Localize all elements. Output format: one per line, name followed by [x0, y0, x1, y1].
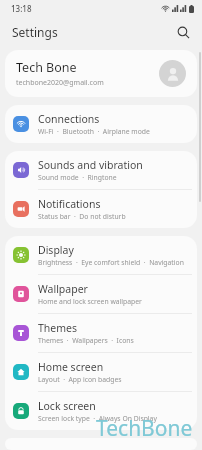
button[interactable]: Themes — [5, 314, 197, 352]
staticText: TechBone — [96, 414, 193, 443]
button[interactable]: Notifications — [5, 190, 197, 228]
staticText: Brightness · Eye comfort shield · Naviga… — [38, 258, 189, 267]
staticText: Home and lock screen wallpaper — [38, 297, 142, 306]
staticText: Screen lock type · Always On Display — [38, 414, 157, 423]
staticText: Layout · App icon badges — [38, 375, 122, 384]
staticText: 13:18 — [11, 3, 32, 14]
staticText: Themes · Wallpapers · Icons — [38, 336, 134, 345]
button[interactable]: Home screen — [5, 353, 197, 391]
staticText: Lock screen — [38, 399, 96, 413]
staticText: techbone2020@gmail.com — [16, 78, 104, 88]
staticText: Tech Bone — [16, 59, 77, 76]
staticText: Settings — [12, 24, 58, 40]
button[interactable]: Sounds and vibration — [5, 151, 197, 189]
staticText: Wallpaper — [38, 282, 88, 296]
staticText: Status bar · Do not disturb — [38, 212, 126, 221]
staticText: Wi-Fi · Bluetooth · Airplane mode — [38, 127, 150, 136]
staticText: Display — [38, 243, 74, 257]
button[interactable]: Tech Bone — [5, 50, 197, 97]
staticText: Connections — [38, 112, 100, 126]
staticText: Home screen — [38, 360, 104, 374]
button[interactable]: Search — [172, 21, 194, 43]
staticText: Sounds and vibration — [38, 158, 143, 172]
button[interactable]: Wallpaper — [5, 275, 197, 313]
button[interactable]: Connections — [5, 105, 197, 143]
button[interactable]: Lock screen — [5, 392, 197, 430]
staticText: Sound mode · Ringtone — [38, 173, 117, 182]
staticText: Notifications — [38, 197, 101, 211]
staticText: Themes — [38, 321, 78, 335]
button[interactable]: Display — [5, 236, 197, 274]
